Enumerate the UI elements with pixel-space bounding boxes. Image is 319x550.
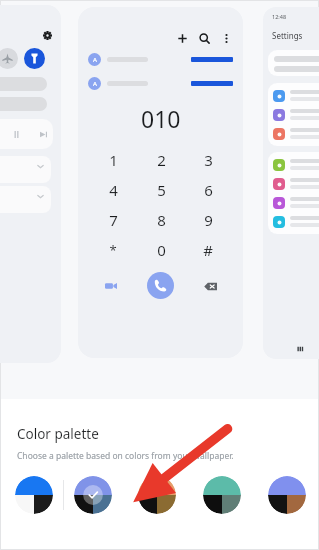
button[interactable]: Color palette option <box>15 476 53 514</box>
button[interactable]: Color palette option <box>138 476 176 514</box>
button[interactable]: 8 <box>144 207 178 233</box>
button[interactable] <box>268 193 319 212</box>
button[interactable]: 3 <box>191 147 225 173</box>
staticText: * <box>109 241 117 259</box>
staticText: 010 <box>141 103 181 134</box>
staticText: Settings <box>272 30 303 41</box>
staticText: # <box>203 240 213 260</box>
staticText: 7 <box>109 210 118 230</box>
staticText: A <box>93 56 97 64</box>
staticText: A <box>93 80 97 88</box>
button[interactable]: Backspace <box>199 275 221 297</box>
button[interactable]: 0 <box>144 237 178 263</box>
staticText: 3 <box>204 150 213 170</box>
button[interactable] <box>268 212 319 231</box>
button[interactable]: Video call <box>100 275 122 297</box>
button[interactable]: More options <box>221 33 232 44</box>
staticText: 2 <box>157 150 166 170</box>
staticText: 1 <box>109 150 118 170</box>
staticText: 6 <box>204 180 213 200</box>
button[interactable]: 4 <box>96 177 130 203</box>
staticText: 12:48 <box>272 13 287 20</box>
button[interactable] <box>268 105 319 124</box>
button[interactable]: * <box>96 237 130 263</box>
staticText: 8 <box>157 210 166 230</box>
button[interactable]: Airplane mode <box>0 48 18 69</box>
staticText: 5 <box>157 180 166 200</box>
button[interactable]: Color palette option <box>203 476 241 514</box>
button[interactable]: 7 <box>96 207 130 233</box>
button[interactable]: Color palette option <box>268 476 306 514</box>
staticText: 0 <box>157 240 166 260</box>
button[interactable] <box>268 86 319 105</box>
button[interactable]: 1 <box>96 147 130 173</box>
button[interactable] <box>268 124 319 143</box>
button[interactable]: # <box>191 237 225 263</box>
staticText: 9 <box>204 210 213 230</box>
other: Recents <box>296 345 304 353</box>
button[interactable]: Call <box>147 272 174 299</box>
button[interactable]: A <box>88 77 233 90</box>
button[interactable] <box>268 155 319 174</box>
button[interactable] <box>268 174 319 193</box>
button[interactable]: Color palette option <box>74 476 112 514</box>
button[interactable]: 5 <box>144 177 178 203</box>
staticText: 4 <box>109 180 118 200</box>
button[interactable]: Add <box>177 33 188 44</box>
button[interactable]: Search <box>199 33 210 44</box>
button[interactable]: 9 <box>191 207 225 233</box>
button[interactable]: 6 <box>191 177 225 203</box>
button[interactable]: Flashlight <box>24 48 45 69</box>
button[interactable]: 2 <box>144 147 178 173</box>
staticText: Choose a palette based on colors from yo… <box>17 450 234 462</box>
button[interactable] <box>268 50 319 76</box>
button[interactable]: Settings <box>43 31 52 40</box>
button[interactable]: A <box>88 53 233 66</box>
staticText: Color palette <box>17 425 99 443</box>
